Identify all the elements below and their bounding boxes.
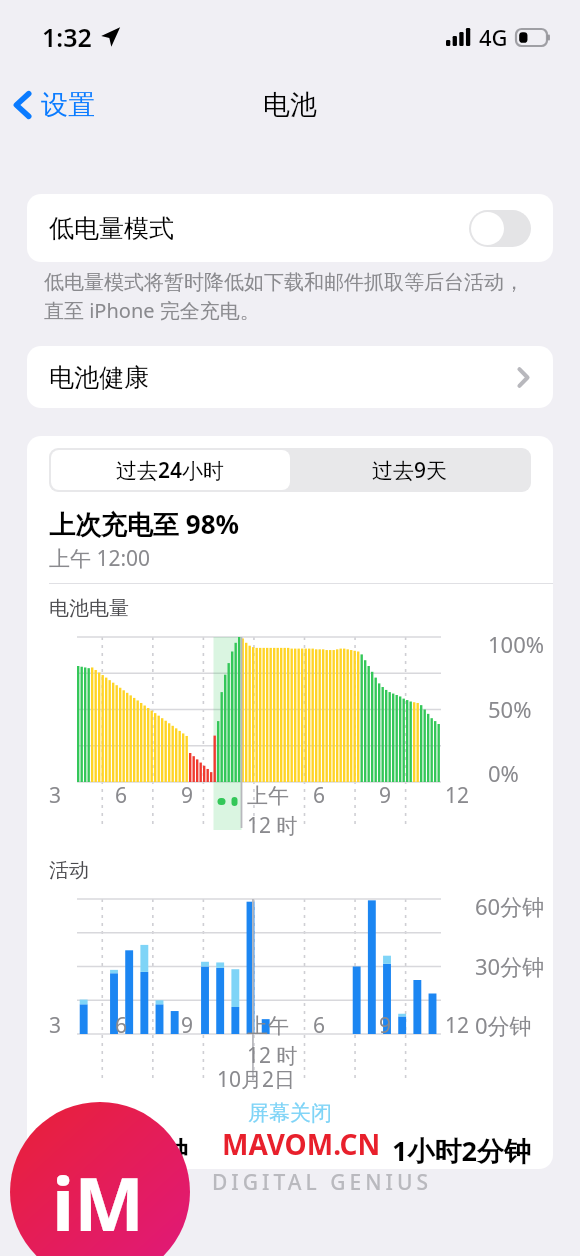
staticText: 100% xyxy=(488,629,545,659)
staticText: 上次充电至 98% xyxy=(49,506,239,542)
staticText: 屏幕关闭 xyxy=(27,1100,553,1126)
staticText: 9 xyxy=(379,781,392,810)
staticText: 6 xyxy=(313,1011,326,1040)
staticText: 50% xyxy=(488,694,532,724)
staticText: 4G xyxy=(479,22,508,52)
staticText: 1小时2分钟 xyxy=(392,1132,531,1169)
staticText: 60分钟 xyxy=(475,891,545,921)
button[interactable]: 低电量模式开关 xyxy=(469,210,531,247)
staticText: 上午 12 时 xyxy=(247,781,313,840)
staticText: 30分钟 xyxy=(475,951,545,981)
staticText: 12 xyxy=(445,1011,470,1040)
staticText: 电池健康 xyxy=(49,362,149,393)
staticText: iM xyxy=(52,1152,144,1253)
staticText: 8小时5分钟 xyxy=(49,1132,188,1169)
staticText: 10月2日 xyxy=(217,1065,296,1094)
staticText: 电池 xyxy=(263,88,317,122)
staticText: 6 xyxy=(115,781,128,810)
staticText: 1:32 xyxy=(42,20,92,54)
button[interactable]: 过去9天 xyxy=(290,450,529,490)
staticText: 9 xyxy=(379,1011,392,1040)
staticText: 3 xyxy=(49,781,62,810)
staticText: 过去24小时 xyxy=(116,456,225,485)
button[interactable]: 电池健康 xyxy=(27,346,553,408)
staticText: 上午 12:00 xyxy=(49,544,151,573)
button[interactable]: 低电量模式 xyxy=(27,194,553,262)
staticText: DIGITAL GENIUS xyxy=(212,1168,432,1197)
staticText: 3 xyxy=(49,1011,62,1040)
staticText: 12 xyxy=(445,781,470,810)
staticText: 电池电量 xyxy=(49,596,129,621)
staticText: 6 xyxy=(313,781,326,810)
staticText: 低电量模式将暂时降低如下载和邮件抓取等后台活动，直至 iPhone 完全充电。 xyxy=(44,270,536,324)
staticText: 上午 12 时 xyxy=(247,1011,313,1070)
staticText: 9 xyxy=(181,1011,194,1040)
button[interactable]: 设置 xyxy=(0,82,107,128)
staticText: 设置 xyxy=(41,88,95,122)
staticText: 过去9天 xyxy=(372,456,448,485)
button[interactable]: 过去24小时 xyxy=(51,450,290,490)
staticText: 低电量模式 xyxy=(49,213,174,244)
staticText: 6 xyxy=(115,1011,128,1040)
staticText: MAVOM.CN xyxy=(222,1125,381,1163)
staticText: 9 xyxy=(181,781,194,810)
staticText: 0% xyxy=(488,758,519,788)
staticText: 活动 xyxy=(49,858,89,883)
staticText: 0分钟 xyxy=(475,1010,532,1040)
